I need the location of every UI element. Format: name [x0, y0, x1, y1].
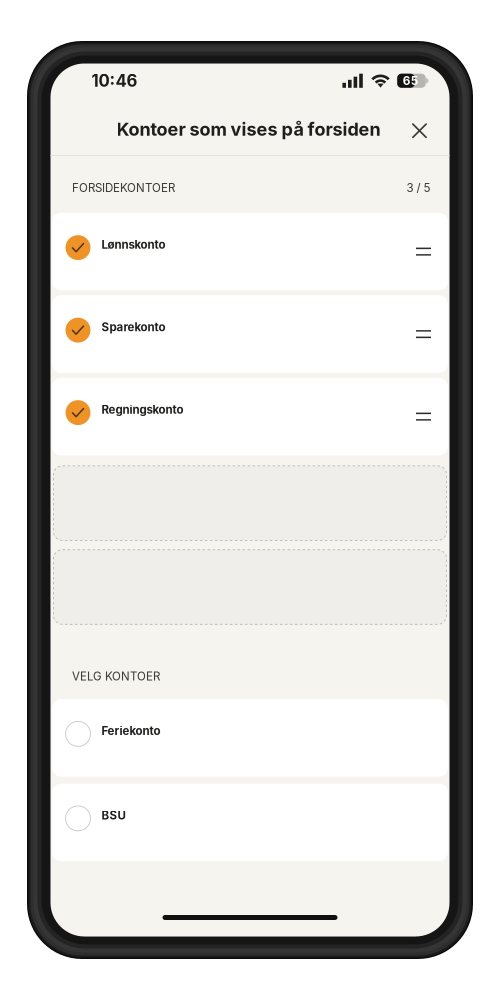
button[interactable]: Regningskonto: [52, 378, 448, 455]
staticText: VELG KONTOER: [72, 669, 160, 683]
staticText: 10:46: [91, 71, 137, 91]
staticText: Regningskonto: [101, 403, 183, 417]
staticText: Sparekonto: [101, 320, 165, 334]
staticText: Lønnskonto: [101, 238, 165, 252]
staticText: 3 / 5: [406, 181, 430, 195]
staticText: BSU: [101, 808, 125, 822]
staticText: FORSIDEKONTOER: [72, 181, 175, 195]
button[interactable]: Feriekonto: [52, 699, 448, 777]
button[interactable]: Lønnskonto: [52, 213, 448, 290]
button[interactable]: BSU: [52, 784, 448, 861]
staticText: Feriekonto: [101, 724, 160, 738]
button[interactable]: Lukk: [400, 109, 438, 153]
staticText: 65: [403, 74, 419, 88]
staticText: Kontoer som vises på forsiden: [116, 118, 380, 140]
button[interactable]: Sparekonto: [52, 295, 448, 373]
